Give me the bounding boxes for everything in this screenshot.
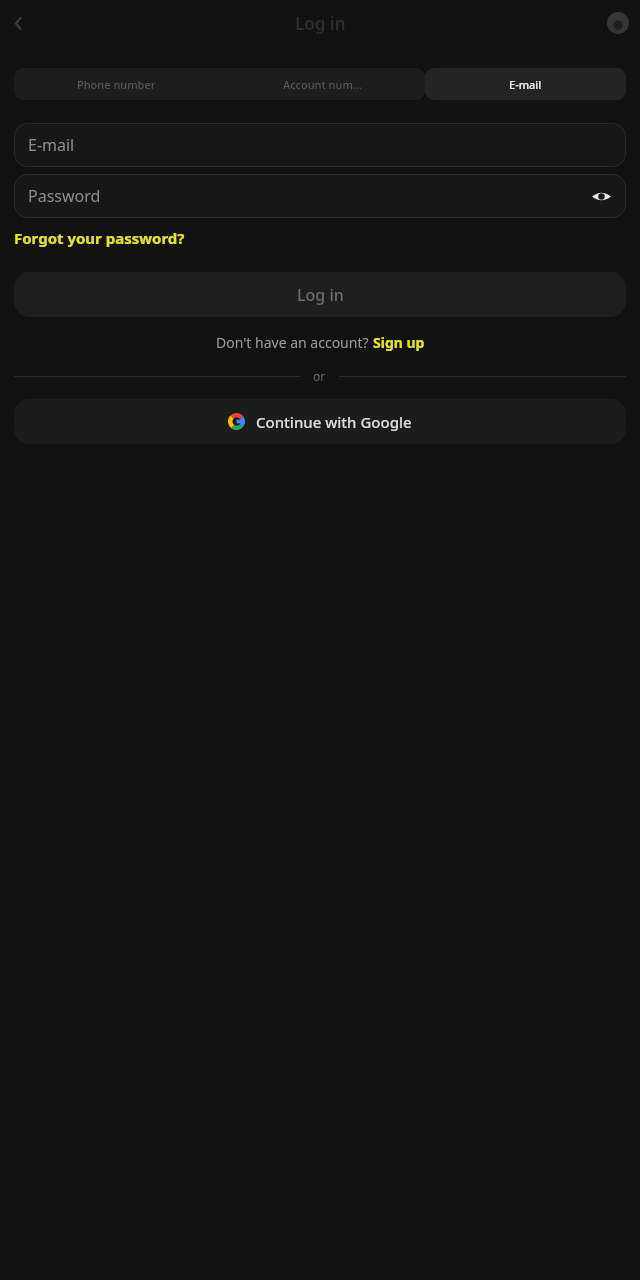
button[interactable]: E-mail	[425, 68, 626, 100]
staticText: Account num...	[283, 77, 362, 92]
staticText: Log in	[295, 12, 346, 35]
button[interactable]: Phone number	[14, 68, 219, 100]
staticText: E-mail	[509, 77, 542, 92]
staticText: Log in	[297, 284, 344, 306]
button[interactable]: Account num...	[219, 68, 425, 100]
staticText: or	[313, 368, 326, 384]
staticText: Password	[28, 185, 101, 207]
button[interactable]: Sign up	[373, 333, 425, 352]
button[interactable]: Support	[603, 8, 633, 38]
button[interactable]: Continue with Google	[14, 399, 626, 444]
staticText: Sign up	[373, 333, 425, 352]
button[interactable]: Show password	[586, 181, 616, 211]
button[interactable]: Password	[14, 174, 626, 218]
button[interactable]: Back	[3, 8, 33, 38]
button[interactable]: Forgot your password?	[14, 225, 185, 251]
staticText: Phone number	[77, 77, 156, 92]
button[interactable]: Log in	[14, 272, 626, 317]
staticText: Don't have an account?	[216, 333, 373, 352]
button[interactable]: E-mail	[14, 123, 626, 167]
staticText: E-mail	[28, 134, 75, 156]
staticText: Continue with Google	[256, 412, 412, 432]
staticText: Forgot your password?	[14, 228, 185, 248]
